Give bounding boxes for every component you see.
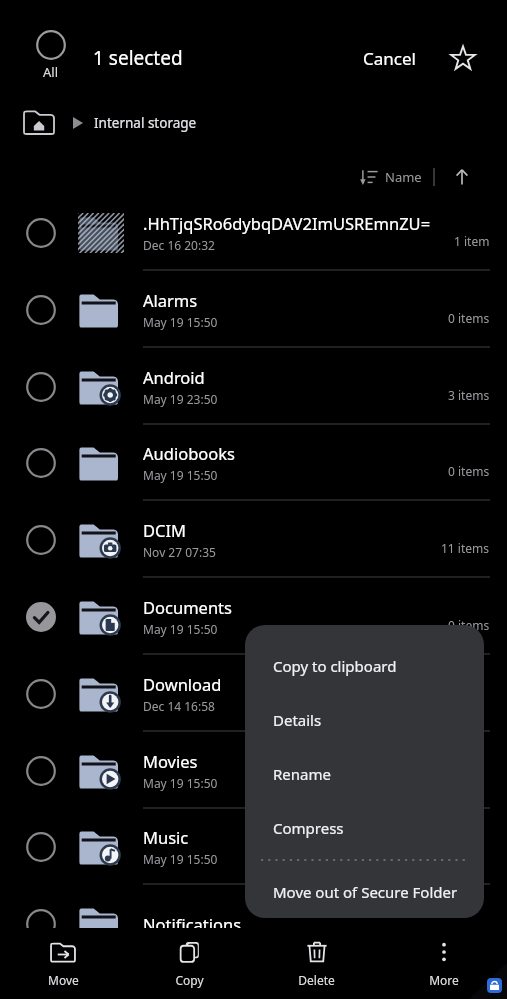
staticText: Copy to clipboard	[273, 656, 397, 676]
staticText: Compress	[273, 818, 344, 838]
staticText: May 19 15:50	[143, 467, 218, 483]
staticText: .HhTjqSRo6dybqDAV2ImUSREmnZU=	[143, 212, 431, 234]
button[interactable]: DCIM	[0, 501, 507, 578]
staticText: Rename	[273, 764, 331, 784]
button[interactable]: Download	[0, 655, 507, 732]
staticText: Copy	[175, 972, 204, 988]
button[interactable]: Copy	[126, 928, 253, 999]
button[interactable]: Android	[0, 348, 507, 425]
button[interactable]: Sort ascending	[447, 162, 477, 192]
staticText: 1 item	[454, 233, 490, 249]
staticText: More	[429, 972, 459, 988]
staticText: Movies	[143, 750, 198, 772]
button[interactable]: Music	[0, 808, 507, 885]
button[interactable]: More	[380, 928, 507, 999]
staticText: Move	[48, 972, 79, 988]
staticText: Name	[385, 168, 422, 186]
button[interactable]: .HhTjqSRo6dybqDAV2ImUSREmnZU=	[0, 194, 507, 271]
staticText: 0 items	[448, 617, 490, 633]
button[interactable]: All	[28, 30, 74, 88]
button[interactable]: Compress	[245, 801, 484, 855]
button[interactable]: Move	[0, 928, 126, 999]
staticText: May 19 23:50	[143, 391, 218, 407]
staticText: Alarms	[143, 289, 198, 311]
staticText: Cancel	[363, 47, 416, 70]
staticText: Music	[143, 826, 189, 848]
staticText: Documents	[143, 596, 232, 618]
staticText: 3 items	[448, 387, 490, 403]
button[interactable]: Notifications	[0, 885, 507, 962]
staticText: Notifications	[143, 913, 242, 935]
staticText: May 19 15:50	[143, 775, 218, 791]
staticText: Move out of Secure Folder	[273, 882, 458, 902]
staticText: Android	[143, 366, 205, 388]
button[interactable]: Details	[245, 693, 484, 747]
staticText: 0 items	[448, 310, 490, 326]
button[interactable]: Cancel	[363, 36, 443, 80]
staticText: 0 items	[448, 463, 490, 479]
staticText: Dec 16 20:32	[143, 237, 215, 253]
staticText: Internal storage	[94, 114, 197, 132]
staticText: May 19 15:50	[143, 851, 218, 867]
button[interactable]: Favorite	[441, 36, 485, 80]
staticText: Audiobooks	[143, 442, 235, 464]
button[interactable]: Name	[360, 160, 422, 194]
staticText: 11 items	[441, 540, 490, 556]
button[interactable]: Movies	[0, 732, 507, 809]
button[interactable]: Internal storage	[24, 105, 197, 141]
staticText: 1 selected	[93, 45, 183, 71]
staticText: May 19 15:50	[143, 314, 218, 330]
staticText: Details	[273, 710, 322, 730]
button[interactable]: Copy to clipboard	[245, 639, 484, 693]
button[interactable]: Audiobooks	[0, 424, 507, 501]
button[interactable]: Delete	[253, 928, 380, 999]
staticText: Download	[143, 673, 222, 695]
staticText: May 19 15:50	[143, 621, 218, 637]
button[interactable]: Documents	[0, 578, 507, 655]
staticText: Dec 14 16:58	[143, 698, 215, 714]
button[interactable]: Rename	[245, 747, 484, 801]
staticText: Delete	[298, 972, 335, 988]
staticText: DCIM	[143, 519, 187, 541]
button[interactable]: Alarms	[0, 271, 507, 348]
button[interactable]: Move out of Secure Folder	[245, 865, 484, 918]
staticText: Nov 27 07:35	[143, 544, 216, 560]
staticText: All	[43, 63, 59, 81]
